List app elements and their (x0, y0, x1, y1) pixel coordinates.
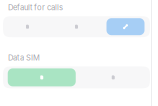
button[interactable]: Ask every time (101, 16, 150, 37)
button[interactable]: SIM (3, 16, 52, 37)
staticText: Data SIM (8, 53, 40, 62)
button[interactable]: SIM (3, 66, 76, 88)
staticText: Default for calls (8, 3, 63, 12)
button[interactable]: SIM (76, 66, 150, 88)
button[interactable]: SIM (52, 16, 101, 37)
